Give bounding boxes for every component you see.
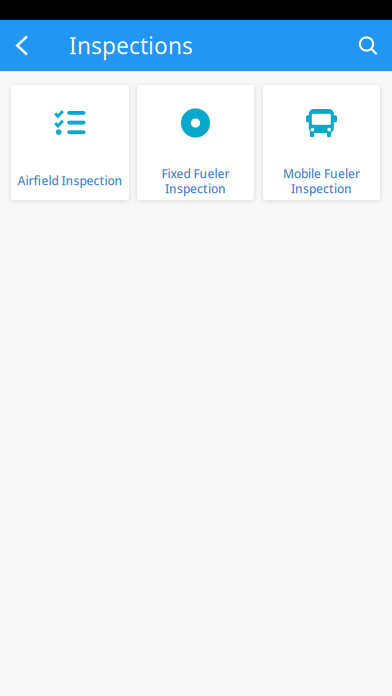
button[interactable]: Airfield Inspection [11, 85, 129, 200]
staticText: Inspection [165, 180, 226, 196]
staticText: Inspections [69, 30, 193, 60]
staticText: Fixed Fueler [161, 165, 229, 181]
staticText: Mobile Fueler [283, 165, 360, 181]
staticText: Inspection [291, 180, 352, 196]
staticText: Airfield Inspection [17, 172, 122, 188]
button[interactable]: Fixed Fueler [137, 85, 254, 200]
button[interactable]: Back [0, 20, 44, 71]
button[interactable]: Search [344, 20, 392, 71]
button[interactable]: Mobile Fueler [263, 85, 380, 200]
